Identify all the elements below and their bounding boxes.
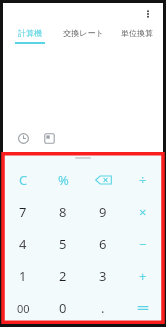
staticText: %	[58, 171, 69, 189]
staticText: 3	[99, 267, 107, 285]
button[interactable]: Backspace	[83, 163, 123, 196]
staticText: 4	[19, 235, 27, 253]
button[interactable]: 4	[3, 228, 43, 260]
button[interactable]: 交換レート	[57, 25, 110, 51]
staticText: 交換レート	[63, 28, 104, 38]
staticText: +	[139, 267, 147, 285]
button[interactable]: %	[43, 163, 83, 196]
staticText: 0	[59, 299, 67, 317]
button[interactable]: 7	[3, 196, 43, 228]
button[interactable]: −	[123, 228, 163, 260]
button[interactable]: Memo	[42, 131, 56, 145]
button[interactable]: 8	[43, 196, 83, 228]
staticText: ×	[139, 203, 147, 221]
staticText: 計算機	[18, 28, 42, 38]
staticText: C	[19, 171, 28, 189]
staticText: 9	[99, 203, 107, 221]
button[interactable]: 単位換算	[110, 25, 163, 51]
staticText: 1	[19, 267, 27, 285]
staticText: 単位換算	[121, 28, 153, 38]
button[interactable]: ÷	[123, 163, 163, 196]
staticText: 00	[17, 301, 30, 316]
button[interactable]: ×	[123, 196, 163, 228]
button[interactable]: 1	[3, 260, 43, 292]
button[interactable]: 9	[83, 196, 123, 228]
staticText: 6	[99, 235, 107, 253]
button[interactable]: 00	[3, 292, 43, 324]
button[interactable]: 5	[43, 228, 83, 260]
button[interactable]: .	[83, 292, 123, 324]
button[interactable]: Equals	[123, 292, 163, 324]
staticText: −	[139, 235, 147, 253]
button[interactable]: +	[123, 260, 163, 292]
button[interactable]: 2	[43, 260, 83, 292]
staticText: 7	[19, 203, 27, 221]
staticText: 8	[59, 203, 67, 221]
button[interactable]: C	[3, 163, 43, 196]
staticText: .	[101, 299, 105, 317]
staticText: ÷	[139, 171, 147, 189]
staticText: 2	[59, 267, 67, 285]
button[interactable]: History	[16, 131, 30, 145]
button[interactable]: More options	[140, 6, 156, 22]
button[interactable]: 計算機	[3, 25, 57, 51]
button[interactable]: 0	[43, 292, 83, 324]
button[interactable]: 6	[83, 228, 123, 260]
button[interactable]: 3	[83, 260, 123, 292]
staticText: 5	[59, 235, 67, 253]
